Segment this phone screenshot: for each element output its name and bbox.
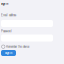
staticText: Sign in: [5, 51, 12, 55]
staticText: Sign in: [1, 2, 8, 6]
staticText: Remember this device: [6, 44, 29, 49]
staticText: Email address: [1, 13, 16, 17]
staticText: Password: [1, 29, 11, 33]
button[interactable]: Sign in: [1, 50, 16, 56]
button[interactable]: Remember this device: [2, 44, 29, 49]
